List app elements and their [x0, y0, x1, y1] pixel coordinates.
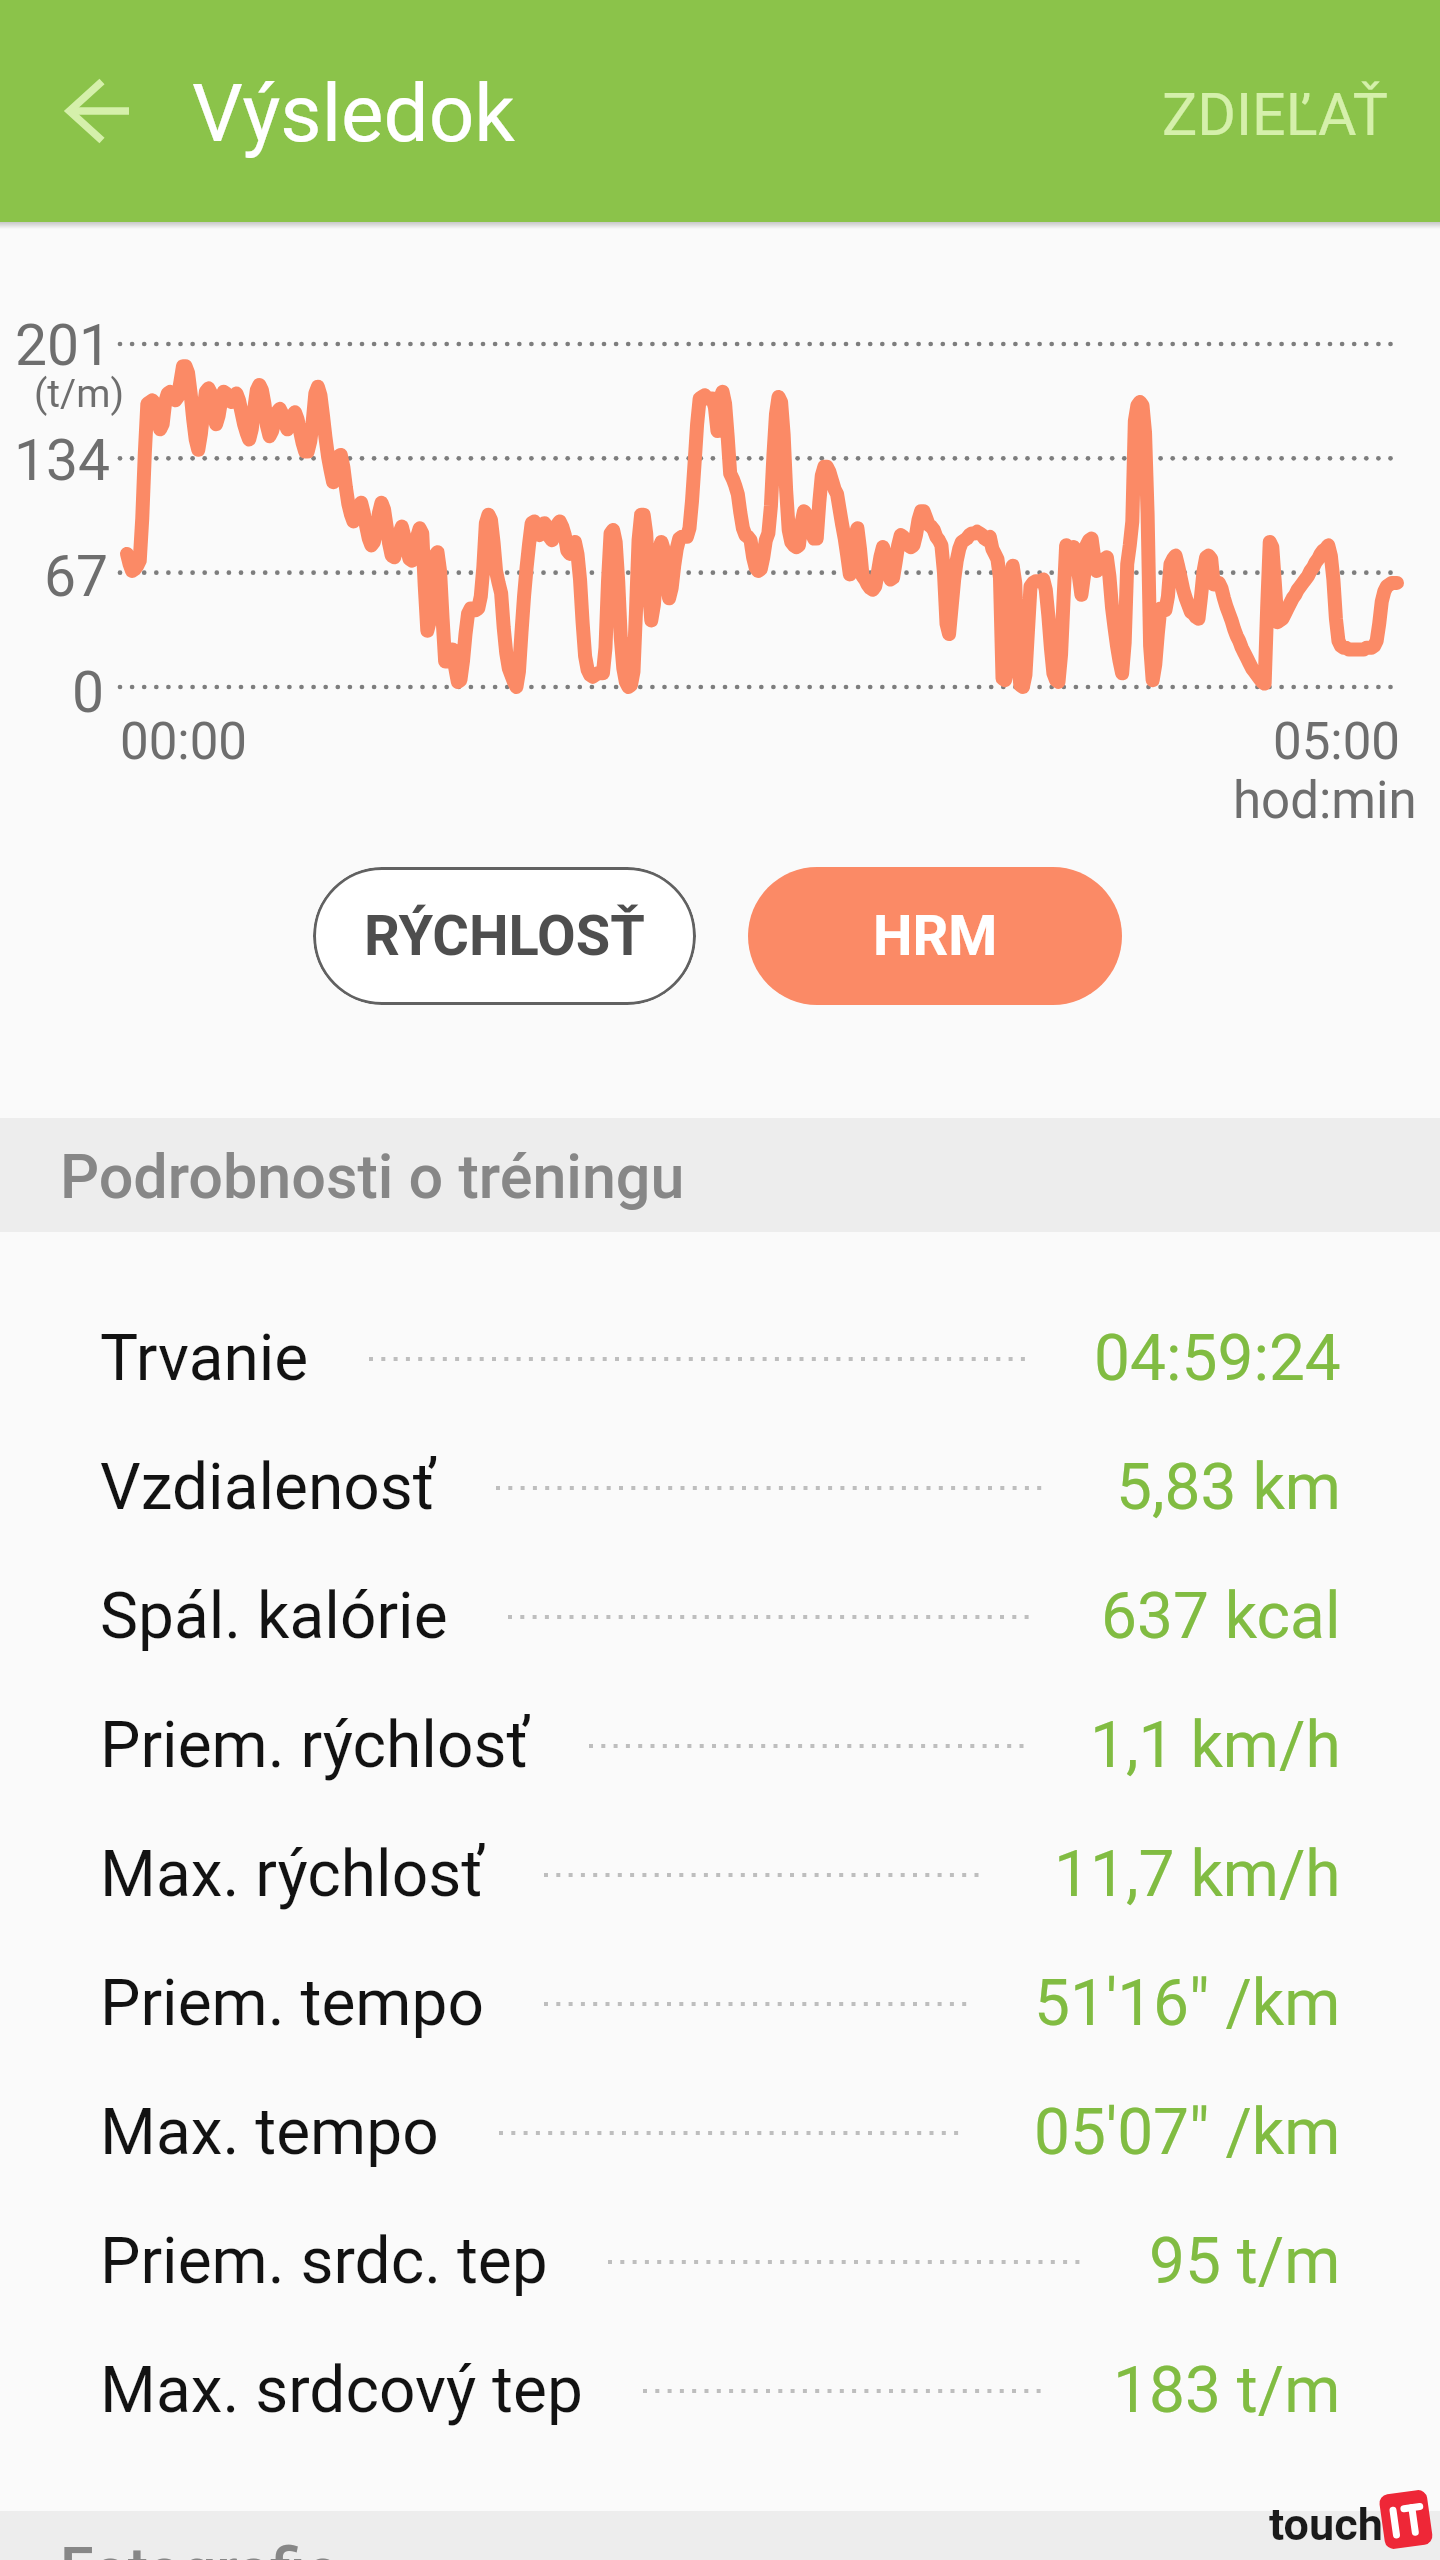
button[interactable]: Max. srdcový tep [0, 2326, 1440, 2455]
staticText: Vzdialenosť [100, 1450, 436, 1525]
button[interactable]: RÝCHLOSŤ [313, 867, 696, 1005]
staticText: 11,7 km/h [1054, 1837, 1341, 1912]
staticText: touch [1269, 2498, 1383, 2551]
staticText: Spál. kalórie [100, 1579, 448, 1654]
staticText: Výsledok [192, 67, 515, 161]
button[interactable]: Priem. rýchlosť [0, 1681, 1440, 1810]
staticText: Priem. srdc. tep [100, 2224, 548, 2299]
staticText: Max. tempo [100, 2095, 439, 2170]
staticText: Podrobnosti o tréningu [60, 1141, 685, 1212]
button[interactable]: Back [34, 49, 158, 173]
button[interactable]: Trvanie [0, 1294, 1440, 1423]
staticText: 05'07" /km [1034, 2095, 1341, 2170]
staticText: Max. rýchlosť [100, 1837, 484, 1912]
staticText: 95 t/m [1149, 2224, 1341, 2299]
staticText: RÝCHLOSŤ [364, 903, 645, 969]
staticText: 5,83 km [1116, 1450, 1341, 1525]
staticText: 1,1 km/h [1090, 1708, 1341, 1783]
staticText: Trvanie [100, 1321, 309, 1396]
button[interactable]: ZDIEĽAŤ [1110, 0, 1440, 222]
staticText: (t/m) [34, 371, 124, 417]
staticText: 134 [14, 427, 111, 494]
staticText: 51'16" /km [1034, 1966, 1341, 2041]
staticText: ZDIEĽAŤ [1162, 80, 1388, 149]
staticText: Priem. tempo [100, 1966, 484, 2041]
button[interactable]: Spál. kalórie [0, 1552, 1440, 1681]
button[interactable]: Max. rýchlosť [0, 1810, 1440, 1939]
staticText: 0 [72, 659, 105, 726]
staticText: hod:min [1233, 771, 1417, 831]
button[interactable]: Priem. srdc. tep [0, 2197, 1440, 2326]
staticText: 183 t/m [1113, 2353, 1341, 2428]
button[interactable]: HRM [748, 867, 1122, 1005]
staticText: 637 kcal [1101, 1579, 1341, 1654]
staticText: Fotografie [60, 2534, 339, 2560]
staticText: Priem. rýchlosť [100, 1708, 529, 1783]
staticText: 201 [15, 312, 112, 379]
staticText: HRM [873, 903, 998, 969]
button[interactable]: Vzdialenosť [0, 1423, 1440, 1552]
staticText: 05:00 [1273, 712, 1401, 772]
staticText: Max. srdcový tep [100, 2353, 583, 2428]
staticText: 00:00 [120, 712, 248, 772]
button[interactable]: Priem. tempo [0, 1939, 1440, 2068]
staticText: 67 [44, 543, 109, 610]
staticText: 04:59:24 [1094, 1321, 1341, 1396]
button[interactable]: Max. tempo [0, 2068, 1440, 2197]
